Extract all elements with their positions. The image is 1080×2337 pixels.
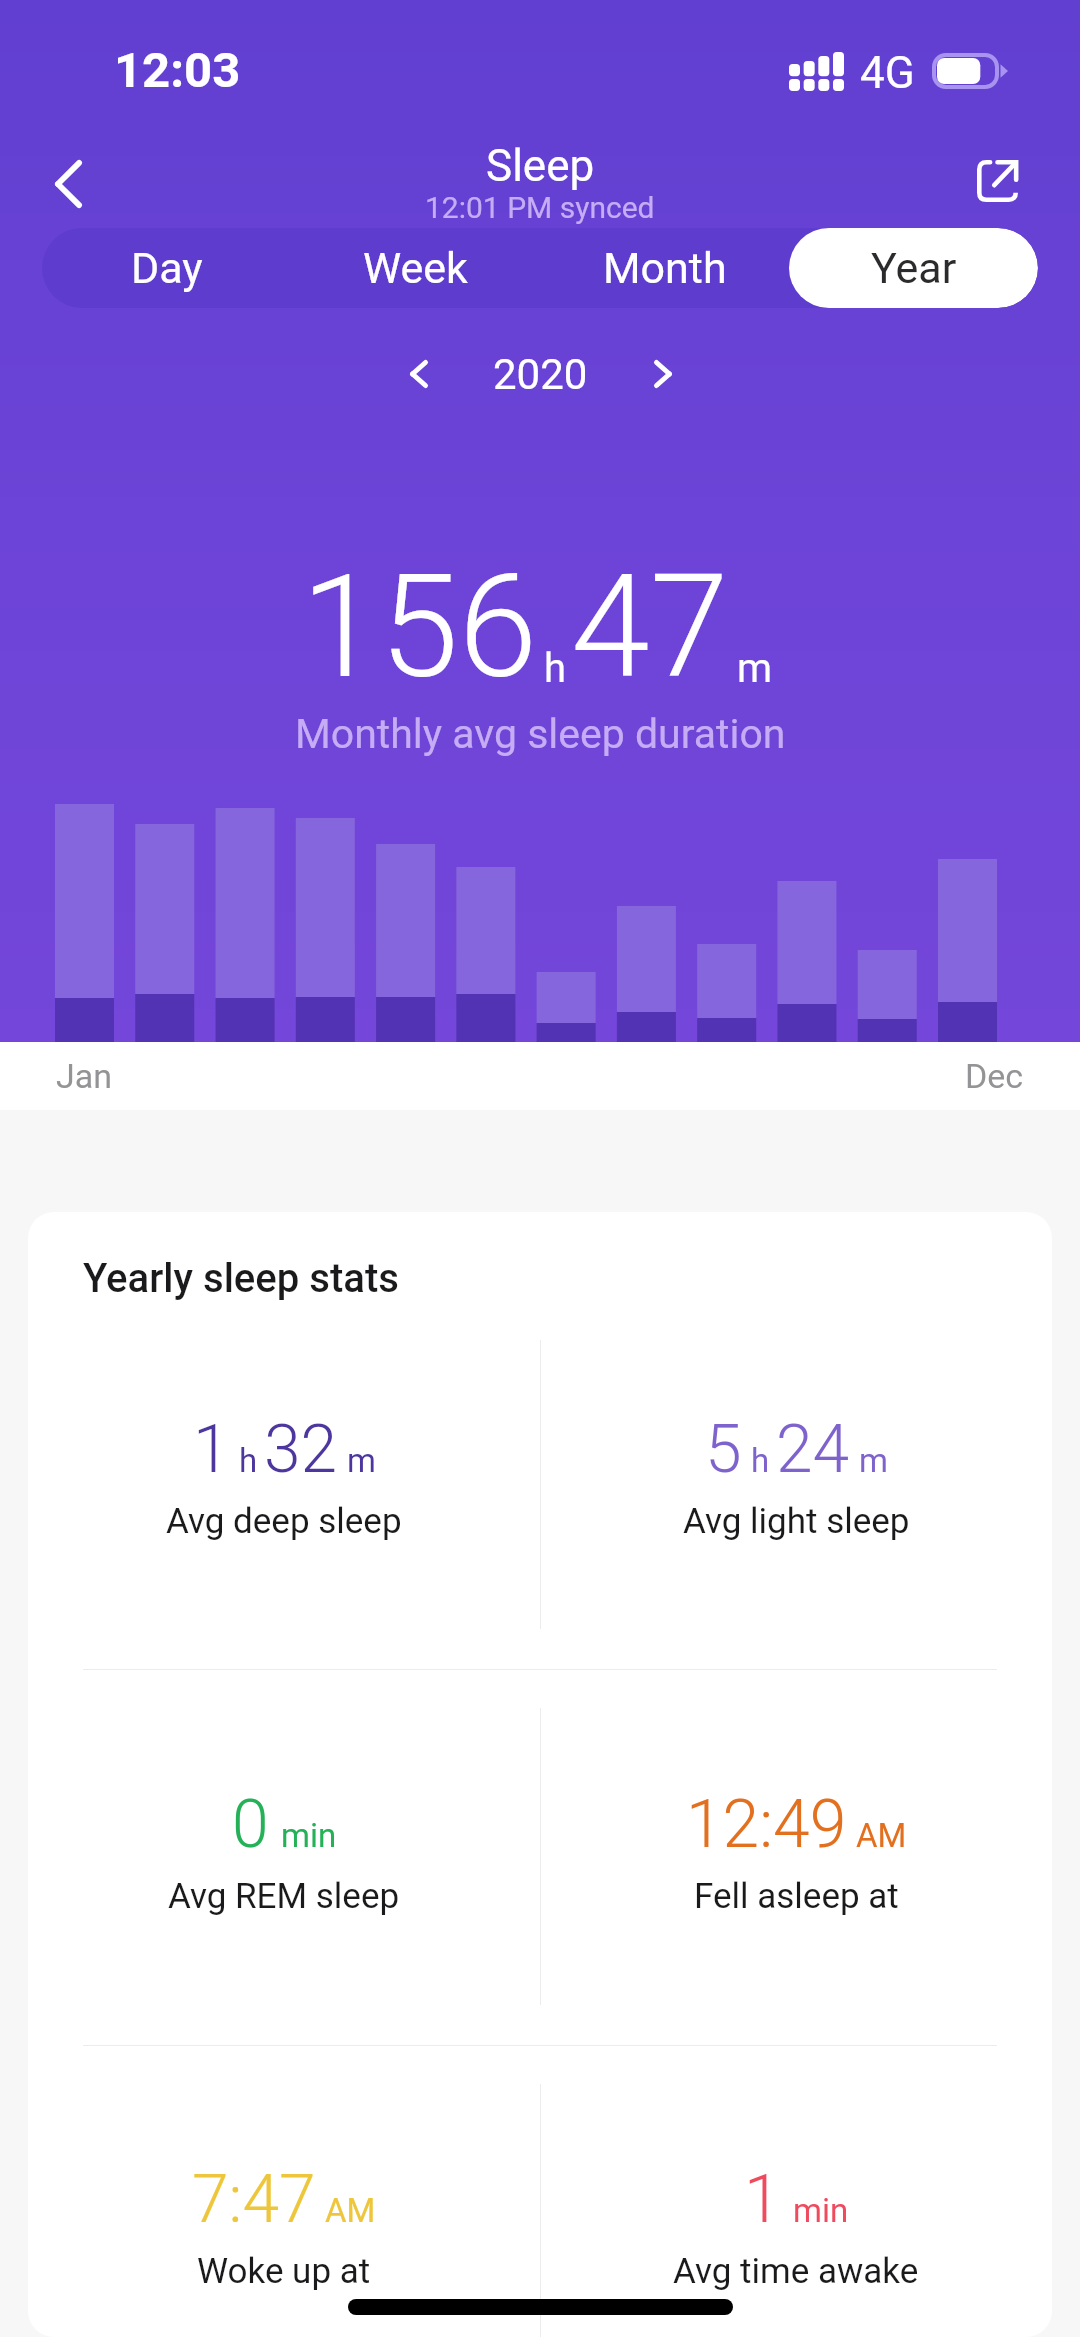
staticText: 24 <box>776 1411 850 1488</box>
staticText: AM <box>856 1816 907 1855</box>
button[interactable]: Year <box>789 228 1038 308</box>
button[interactable]: Previous year <box>376 331 461 416</box>
button[interactable]: Month <box>540 228 789 308</box>
staticText: 12:49 <box>686 1786 847 1863</box>
staticText: 12:03 <box>114 42 241 99</box>
staticText: AM <box>325 2191 376 2230</box>
staticText: Sleep <box>486 140 595 192</box>
staticText: 1 <box>193 1411 230 1488</box>
button[interactable]: Week <box>291 228 540 308</box>
staticText: Avg time awake <box>673 2251 919 2292</box>
staticText: Jan <box>56 1056 113 1096</box>
staticText: h <box>751 1441 770 1480</box>
staticText: 47 <box>571 544 729 710</box>
staticText: min <box>793 2191 849 2230</box>
staticText: 1 <box>744 2161 781 2238</box>
button[interactable]: Next year <box>620 331 705 416</box>
staticText: 5 <box>705 1411 742 1488</box>
staticText: 0 <box>232 1786 269 1863</box>
staticText: 2020 <box>493 350 588 399</box>
staticText: m <box>737 645 773 692</box>
button[interactable]: Share <box>949 133 1045 229</box>
staticText: Avg REM sleep <box>168 1876 400 1917</box>
staticText: h <box>544 645 567 692</box>
staticText: Day <box>131 243 203 293</box>
staticText: m <box>859 1441 888 1480</box>
staticText: Fell asleep at <box>694 1876 899 1917</box>
staticText: Yearly sleep stats <box>83 1255 399 1302</box>
staticText: min <box>281 1816 337 1855</box>
button[interactable]: Back <box>20 136 116 232</box>
staticText: 4G <box>860 47 915 99</box>
staticText: Woke up at <box>197 2251 371 2292</box>
staticText: Avg deep sleep <box>166 1501 402 1542</box>
staticText: Monthly avg sleep duration <box>295 710 786 758</box>
staticText: Week <box>363 243 468 293</box>
button[interactable]: Day <box>42 228 291 308</box>
staticText: Dec <box>965 1056 1024 1096</box>
staticText: h <box>239 1441 258 1480</box>
staticText: Avg light sleep <box>683 1501 910 1542</box>
staticText: 156 <box>301 544 538 710</box>
staticText: Year <box>871 243 957 293</box>
staticText: m <box>347 1441 376 1480</box>
staticText: Month <box>603 243 727 293</box>
staticText: 32 <box>264 1411 338 1488</box>
staticText: 12:01 PM synced <box>425 190 655 225</box>
staticText: 7:47 <box>192 2161 316 2238</box>
